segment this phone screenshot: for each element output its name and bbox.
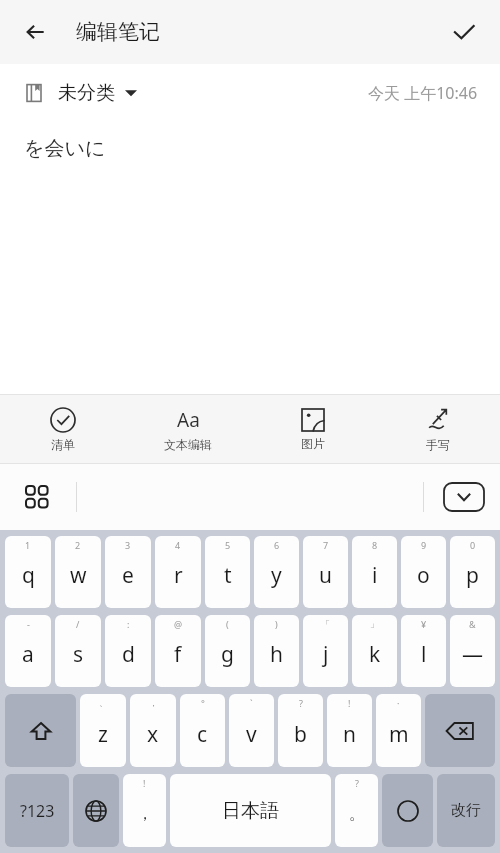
staticText: d — [122, 640, 135, 669]
button[interactable]: Aa — [125, 395, 250, 463]
button[interactable]: ? — [278, 694, 323, 767]
button[interactable]: Backspace — [425, 694, 495, 767]
button[interactable]: 0 — [450, 536, 495, 608]
button[interactable]: Back — [14, 10, 58, 54]
button[interactable]: ， — [130, 694, 176, 767]
staticText: 「 — [321, 618, 330, 629]
button[interactable]: ° — [180, 694, 225, 767]
staticText: w — [70, 561, 87, 590]
staticText: Aa — [177, 407, 200, 433]
staticText: を会いに — [24, 136, 106, 161]
staticText: 手写 — [426, 437, 450, 452]
button[interactable]: 1 — [5, 536, 51, 608]
staticText: p — [466, 561, 479, 590]
staticText: ( — [226, 618, 229, 630]
button[interactable]: 手写 — [375, 395, 500, 463]
button[interactable]: 日本語 — [170, 774, 331, 847]
staticText: y — [271, 561, 282, 590]
staticText: ) — [275, 618, 278, 630]
staticText: ? — [355, 777, 359, 789]
staticText: ?123 — [20, 800, 55, 822]
button[interactable]: Shift — [5, 694, 76, 767]
staticText: 6 — [274, 539, 280, 551]
button[interactable]: 「 — [303, 615, 348, 687]
button[interactable]: 8 — [352, 536, 397, 608]
staticText: j — [323, 640, 329, 669]
staticText: 今天 上午10:46 — [368, 82, 478, 104]
staticText: 改行 — [451, 801, 481, 820]
button[interactable]: : — [105, 615, 151, 687]
button[interactable]: ( — [205, 615, 250, 687]
button[interactable]: Save — [442, 10, 486, 54]
button[interactable]: 5 — [205, 536, 250, 608]
staticText: 9 — [421, 539, 427, 551]
staticText: q — [22, 561, 35, 590]
button[interactable]: ? — [335, 774, 378, 847]
staticText: u — [319, 561, 332, 590]
staticText: 未分类 — [58, 81, 115, 105]
button[interactable]: / — [55, 615, 101, 687]
button[interactable]: 3 — [105, 536, 151, 608]
staticText: 、 — [99, 697, 108, 708]
staticText: 0 — [470, 539, 476, 551]
staticText: s — [73, 640, 84, 669]
button[interactable]: ! — [123, 774, 166, 847]
button[interactable]: Change language — [73, 774, 119, 847]
button[interactable]: 4 — [155, 536, 201, 608]
button[interactable]: 图片 — [250, 395, 375, 463]
staticText: e — [122, 561, 134, 590]
staticText: 。 — [349, 804, 365, 824]
staticText: c — [197, 720, 208, 749]
button[interactable]: Emoji — [382, 774, 433, 847]
button[interactable]: & — [450, 615, 495, 687]
button[interactable]: @ — [155, 615, 201, 687]
button[interactable]: 7 — [303, 536, 348, 608]
button[interactable]: 」 — [352, 615, 397, 687]
button[interactable]: ! — [327, 694, 372, 767]
staticText: / — [76, 618, 80, 630]
staticText: ， — [149, 697, 158, 708]
staticText: 文本编辑 — [164, 437, 212, 452]
staticText: - — [27, 618, 30, 630]
button[interactable]: 9 — [401, 536, 446, 608]
button[interactable]: · — [376, 694, 421, 767]
button[interactable]: Enter — [437, 774, 495, 847]
button[interactable]: ?123 — [5, 774, 69, 847]
staticText: 5 — [225, 539, 231, 551]
button[interactable]: ` — [229, 694, 274, 767]
staticText: 3 — [125, 539, 131, 551]
button[interactable]: 2 — [55, 536, 101, 608]
button[interactable]: 6 — [254, 536, 299, 608]
staticText: — — [462, 640, 483, 669]
staticText: ! — [143, 777, 146, 789]
staticText: ° — [201, 697, 205, 709]
staticText: 清单 — [51, 437, 75, 452]
staticText: · — [397, 697, 400, 709]
staticText: 4 — [175, 539, 181, 551]
staticText: 」 — [370, 618, 379, 629]
staticText: g — [221, 640, 234, 669]
staticText: ` — [250, 697, 253, 709]
staticText: 图片 — [301, 436, 325, 451]
staticText: b — [294, 720, 307, 749]
button[interactable]: - — [5, 615, 51, 687]
button[interactable]: Keyboard layouts — [16, 476, 58, 518]
staticText: x — [147, 720, 159, 749]
button[interactable]: ¥ — [401, 615, 446, 687]
staticText: f — [174, 640, 182, 669]
button[interactable]: 未分类 — [24, 81, 137, 105]
staticText: o — [417, 561, 430, 590]
staticText: 2 — [75, 539, 81, 551]
staticText: 8 — [372, 539, 378, 551]
staticText: @ — [174, 618, 183, 630]
staticText: 1 — [25, 539, 31, 551]
staticText: ! — [348, 697, 351, 709]
staticText: k — [369, 640, 381, 669]
button[interactable]: ) — [254, 615, 299, 687]
button[interactable]: 清单 — [0, 395, 125, 463]
button[interactable]: Hide keyboard — [442, 481, 486, 513]
staticText: i — [372, 561, 378, 590]
staticText: t — [224, 561, 232, 590]
staticText: 日本語 — [222, 799, 279, 823]
button[interactable]: 、 — [80, 694, 126, 767]
